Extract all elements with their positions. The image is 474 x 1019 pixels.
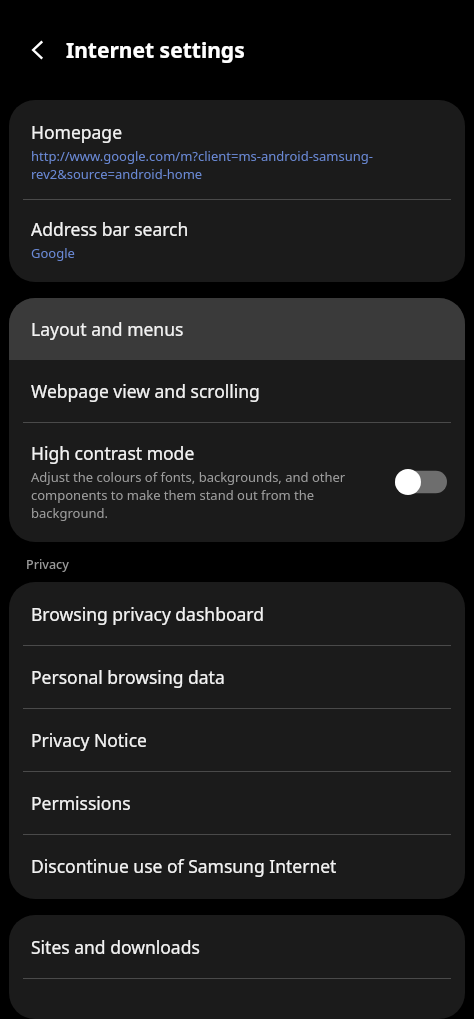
staticText: Personal browsing data [31,665,225,689]
button[interactable]: Personal browsing data [9,646,465,708]
staticText: Internet settings [66,36,245,65]
staticText: Homepage [31,120,122,144]
button[interactable]: Back [14,26,62,74]
button[interactable]: Webpage view and scrolling [9,360,465,422]
button[interactable]: Privacy Notice [9,709,465,771]
staticText: Webpage view and scrolling [31,379,260,403]
button[interactable]: High contrast mode [9,423,465,542]
button[interactable]: Useful features [9,979,465,1019]
staticText: Sites and downloads [31,935,200,959]
button[interactable]: Discontinue use of Samsung Internet [9,835,465,899]
button[interactable]: High contrast mode toggle [395,469,447,495]
staticText: Privacy Notice [31,728,147,752]
button[interactable]: Layout and menus [9,298,465,360]
staticText: Address bar search [31,217,189,241]
button[interactable]: Address bar search [9,200,465,282]
button[interactable]: Browsing privacy dashboard [9,582,465,645]
button[interactable]: Homepage [9,100,465,199]
staticText: High contrast mode [31,441,195,465]
staticText: http://www.google.com/m?client=ms-androi… [31,147,443,183]
staticText: Permissions [31,791,131,815]
staticText: Discontinue use of Samsung Internet [31,854,337,878]
staticText: Google [31,244,75,262]
staticText: Privacy [26,556,69,573]
staticText: Layout and menus [31,317,184,341]
staticText: Adjust the colours of fonts, backgrounds… [31,468,383,522]
button[interactable]: Sites and downloads [9,915,465,978]
staticText: Browsing privacy dashboard [31,602,264,626]
button[interactable]: Permissions [9,772,465,834]
